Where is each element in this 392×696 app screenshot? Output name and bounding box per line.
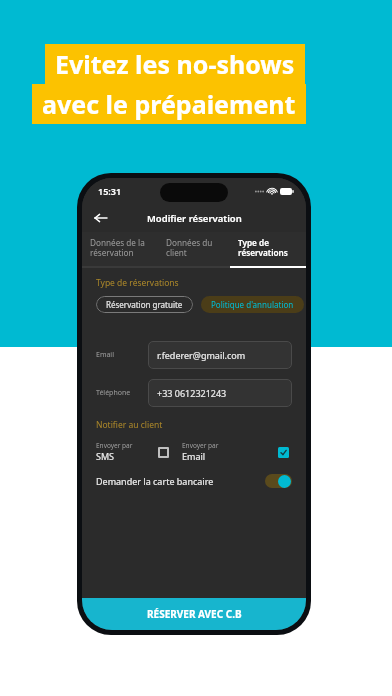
- staticText: Envoyer par: [182, 441, 219, 450]
- button[interactable]: r.federer@gmail.com: [148, 341, 292, 369]
- button[interactable]: Back: [90, 207, 112, 229]
- button[interactable]: Politique d'annulation: [201, 296, 304, 313]
- staticText: Politique d'annulation: [211, 299, 294, 310]
- staticText: Modifier réservation: [147, 212, 242, 225]
- staticText: SMS: [96, 450, 115, 462]
- button[interactable]: Données de la réservation: [82, 232, 158, 266]
- staticText: Email: [96, 350, 114, 360]
- staticText: Notifier au client: [96, 419, 163, 431]
- button[interactable]: Envoyer par Email: [274, 443, 292, 461]
- staticText: Type de réservations: [96, 277, 179, 289]
- staticText: RÉSERVER AVEC C.B: [147, 607, 242, 621]
- button[interactable]: Réservation gratuite: [96, 296, 193, 313]
- staticText: Envoyer par: [96, 441, 133, 450]
- button[interactable]: Demander la carte bancaire: [96, 474, 292, 488]
- staticText: r.federer@gmail.com: [157, 349, 246, 361]
- staticText: Email: [182, 450, 206, 462]
- staticText: Demander la carte bancaire: [96, 475, 214, 487]
- button[interactable]: +33 0612321243: [148, 379, 292, 407]
- staticText: 15:31: [98, 185, 122, 197]
- staticText: Données du client: [166, 237, 213, 258]
- staticText: Réservation gratuite: [106, 299, 183, 310]
- staticText: Téléphone: [96, 388, 131, 398]
- staticText: Evitez les no-shows: [55, 47, 295, 81]
- staticText: Type de réservations: [238, 237, 288, 258]
- staticText: avec le prépaiement: [42, 87, 296, 121]
- button[interactable]: Envoyer par SMS: [154, 443, 172, 461]
- staticText: +33 0612321243: [157, 387, 227, 399]
- button[interactable]: RÉSERVER AVEC C.B: [82, 598, 306, 630]
- staticText: Données de la réservation: [90, 237, 145, 258]
- button[interactable]: Données du client: [158, 232, 230, 266]
- button[interactable]: Type de réservations: [230, 232, 306, 266]
